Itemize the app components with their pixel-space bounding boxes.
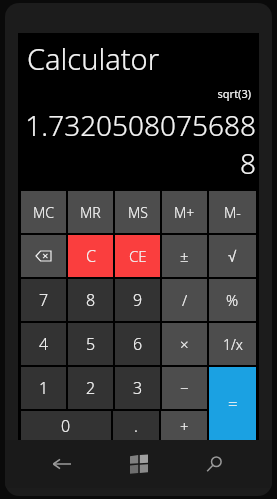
- staticText: C: [86, 245, 96, 267]
- button[interactable]: 5: [68, 323, 113, 365]
- button[interactable]: MS: [115, 191, 160, 233]
- staticText: −: [180, 378, 189, 398]
- button[interactable]: MC: [21, 191, 66, 233]
- staticText: MC: [33, 203, 54, 222]
- button[interactable]: M-: [209, 191, 256, 233]
- staticText: 6: [133, 333, 143, 355]
- button[interactable]: 8: [68, 279, 113, 321]
- button[interactable]: /: [162, 279, 207, 321]
- button[interactable]: 3: [115, 367, 160, 409]
- button[interactable]: =: [209, 367, 256, 440]
- staticText: ±: [180, 246, 189, 266]
- staticText: 9: [133, 289, 143, 311]
- button[interactable]: Back: [39, 442, 83, 486]
- staticText: M+: [174, 203, 195, 222]
- staticText: 2: [86, 377, 96, 399]
- staticText: CE: [129, 246, 147, 266]
- staticText: M-: [224, 203, 241, 222]
- staticText: Calculator: [27, 39, 160, 78]
- button[interactable]: 4: [21, 323, 66, 365]
- staticText: %: [226, 290, 239, 310]
- button[interactable]: Search: [194, 442, 238, 486]
- staticText: 1.73205080756888: [18, 106, 256, 182]
- staticText: 4: [39, 333, 49, 355]
- button[interactable]: +: [161, 411, 207, 440]
- button[interactable]: M+: [162, 191, 207, 233]
- staticText: 5: [86, 333, 96, 355]
- button[interactable]: ±: [162, 235, 207, 277]
- button[interactable]: MR: [68, 191, 113, 233]
- staticText: 7: [39, 289, 49, 311]
- button[interactable]: C: [68, 235, 113, 277]
- staticText: 1/x: [223, 335, 243, 354]
- button[interactable]: 2: [68, 367, 113, 409]
- button[interactable]: 6: [115, 323, 160, 365]
- staticText: 1: [39, 377, 49, 399]
- button[interactable]: √: [209, 235, 256, 277]
- staticText: =: [228, 392, 238, 415]
- staticText: +: [180, 416, 189, 436]
- staticText: sqrt(3): [18, 86, 251, 101]
- staticText: 3: [133, 377, 143, 399]
- button[interactable]: 7: [21, 279, 66, 321]
- staticText: .: [134, 415, 138, 437]
- staticText: MS: [128, 203, 148, 222]
- staticText: 8: [86, 289, 96, 311]
- button[interactable]: CE: [115, 235, 160, 277]
- button[interactable]: .: [113, 411, 159, 440]
- staticText: ×: [180, 334, 189, 354]
- button[interactable]: 9: [115, 279, 160, 321]
- button[interactable]: −: [162, 367, 207, 409]
- staticText: MR: [80, 203, 101, 222]
- button[interactable]: Backspace: [21, 235, 66, 277]
- staticText: √: [228, 248, 237, 265]
- staticText: /: [182, 290, 188, 310]
- button[interactable]: 1/x: [209, 323, 256, 365]
- button[interactable]: 0: [21, 411, 111, 440]
- button[interactable]: Start: [117, 442, 161, 486]
- button[interactable]: ×: [162, 323, 207, 365]
- staticText: 0: [61, 415, 71, 437]
- button[interactable]: %: [209, 279, 256, 321]
- button[interactable]: 1: [21, 367, 66, 409]
